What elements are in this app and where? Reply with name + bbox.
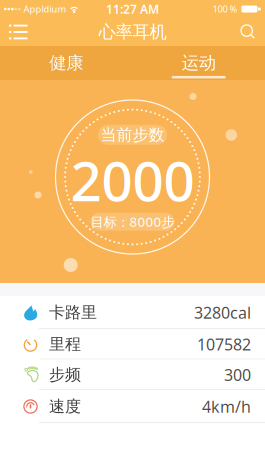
staticText: 100 % [212,3,237,15]
button[interactable]: 卡路里 [0,296,265,329]
staticText: 步频 [49,365,81,385]
staticText: 300 [224,364,251,385]
staticText: 心率耳机 [98,21,166,43]
staticText: 11:27 AM [106,1,159,17]
button[interactable]: 步频 [0,359,265,390]
button[interactable]: 健康 [0,46,132,80]
button[interactable]: Menu [0,18,29,46]
staticText: 107582 [197,334,251,355]
button[interactable]: 运动 [132,46,265,80]
staticText: 里程 [49,334,81,354]
staticText: 健康 [49,52,83,74]
staticText: 速度 [49,397,81,416]
staticText: 卡路里 [49,303,97,322]
button[interactable]: Search [240,18,265,46]
staticText: 目标：8000步 [90,213,174,230]
staticText: 运动 [182,52,216,74]
staticText: 2000 [70,144,194,216]
staticText: 3280cal [194,302,251,323]
staticText: Appldium [24,3,67,15]
button[interactable]: 速度 [0,390,265,423]
staticText: 4km/h [202,396,251,417]
button[interactable]: 里程 [0,329,265,359]
staticText: 当前步数 [100,125,164,145]
